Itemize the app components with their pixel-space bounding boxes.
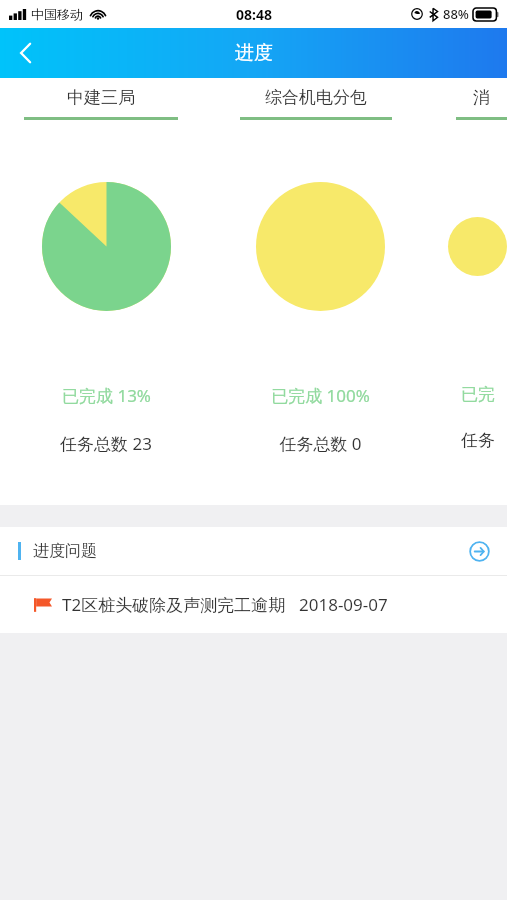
staticText: 任务总数 23 — [60, 432, 152, 455]
staticText: 进度 — [235, 41, 273, 65]
staticText: T2区桩头破除及声测完工逾期 — [62, 593, 286, 616]
button[interactable]: 已完成 13% — [20, 182, 192, 455]
button[interactable]: T2区桩头破除及声测完工逾期 — [0, 576, 507, 633]
staticText: 已完成 13% — [62, 384, 151, 407]
button[interactable]: 消 — [456, 87, 507, 120]
staticText: 中国移动 — [31, 6, 83, 22]
staticText: 已完 — [461, 384, 495, 405]
staticText: 中建三局 — [67, 87, 135, 108]
button[interactable]: Back — [0, 28, 50, 78]
staticText: 2018-09-07 — [299, 593, 388, 616]
staticText: 08:48 — [236, 5, 272, 24]
staticText: 任务 — [461, 430, 495, 451]
button[interactable]: More — [467, 539, 491, 563]
button[interactable]: 中建三局 — [24, 87, 178, 120]
staticText: 任务总数 0 — [279, 432, 362, 455]
button[interactable]: 已完成 100% — [234, 182, 406, 455]
staticText: 综合机电分包 — [265, 87, 367, 108]
button[interactable]: 已完 — [448, 182, 507, 451]
staticText: 消 — [473, 87, 490, 108]
staticText: 88% — [443, 5, 469, 23]
button[interactable]: 进度问题 — [0, 527, 507, 575]
button[interactable]: 综合机电分包 — [240, 87, 392, 120]
staticText: 已完成 100% — [271, 384, 370, 407]
staticText: 进度问题 — [33, 541, 97, 561]
